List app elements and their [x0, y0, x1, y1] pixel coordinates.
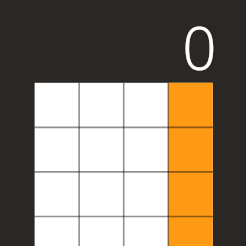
staticText: 0 — [182, 6, 217, 76]
button[interactable]: 0 — [158, 4, 230, 74]
other: Game board — [0, 0, 246, 246]
button[interactable]: Game board — [35, 83, 213, 246]
